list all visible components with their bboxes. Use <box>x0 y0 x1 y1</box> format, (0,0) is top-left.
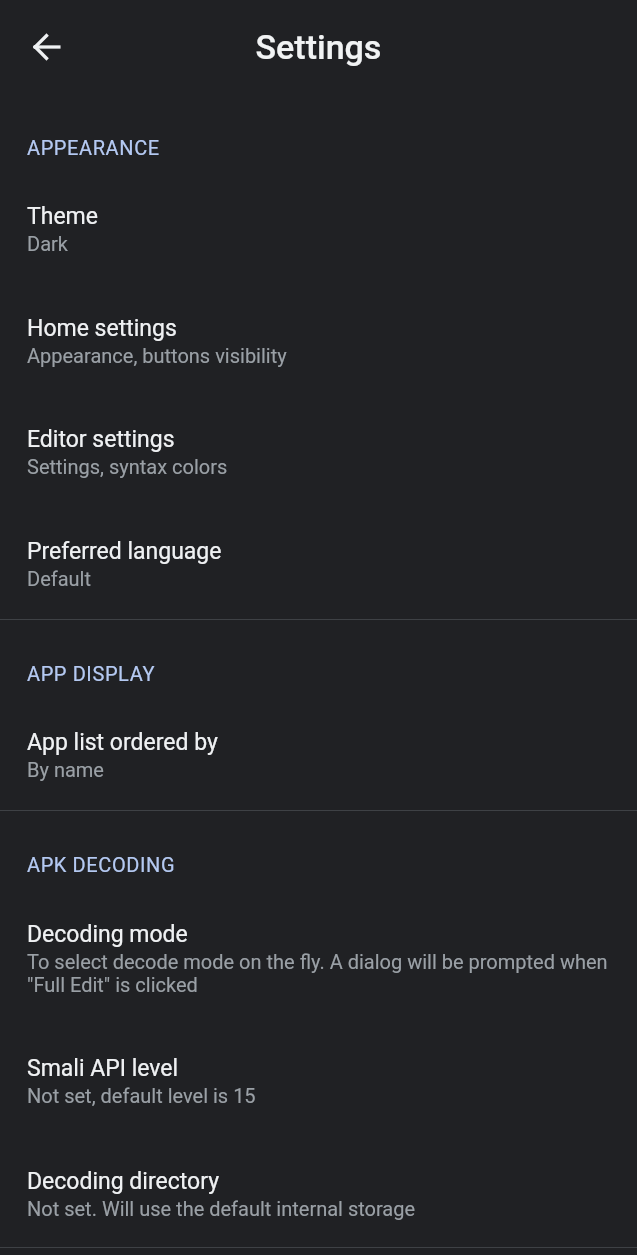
staticText: By name <box>27 758 104 781</box>
staticText: Decoding mode <box>27 921 188 948</box>
staticText: APPEARANCE <box>27 136 637 159</box>
button[interactable]: Navigate up <box>19 19 75 75</box>
staticText: Not set. Will use the default internal s… <box>27 1197 416 1220</box>
staticText: Smali API level <box>27 1055 179 1082</box>
staticText: APP DISPLAY <box>27 662 637 685</box>
staticText: App list ordered by <box>27 729 218 756</box>
staticText: Not set, default level is 15 <box>27 1084 256 1107</box>
staticText: Dark <box>27 232 68 255</box>
button[interactable]: Editor settings <box>0 420 637 488</box>
staticText: Preferred language <box>27 538 222 565</box>
staticText: Editor settings <box>27 426 175 453</box>
staticText: Home settings <box>27 315 177 342</box>
staticText: Settings <box>0 27 637 67</box>
button[interactable]: Theme <box>0 197 637 265</box>
staticText: Default <box>27 567 91 590</box>
button[interactable]: Home settings <box>0 309 637 377</box>
button[interactable]: Decoding directory <box>0 1162 637 1230</box>
staticText: To select decode mode on the fly. A dial… <box>27 950 610 996</box>
staticText: APK DECODING <box>27 853 637 876</box>
staticText: Decoding directory <box>27 1168 220 1195</box>
button[interactable]: Preferred language <box>0 532 637 600</box>
button[interactable]: Smali API level <box>0 1049 637 1117</box>
staticText: Theme <box>27 203 98 230</box>
button[interactable]: App list ordered by <box>0 723 637 791</box>
button[interactable]: Decoding mode <box>0 915 637 1006</box>
staticText: Settings, syntax colors <box>27 455 228 478</box>
staticText: Appearance, buttons visibility <box>27 344 287 367</box>
